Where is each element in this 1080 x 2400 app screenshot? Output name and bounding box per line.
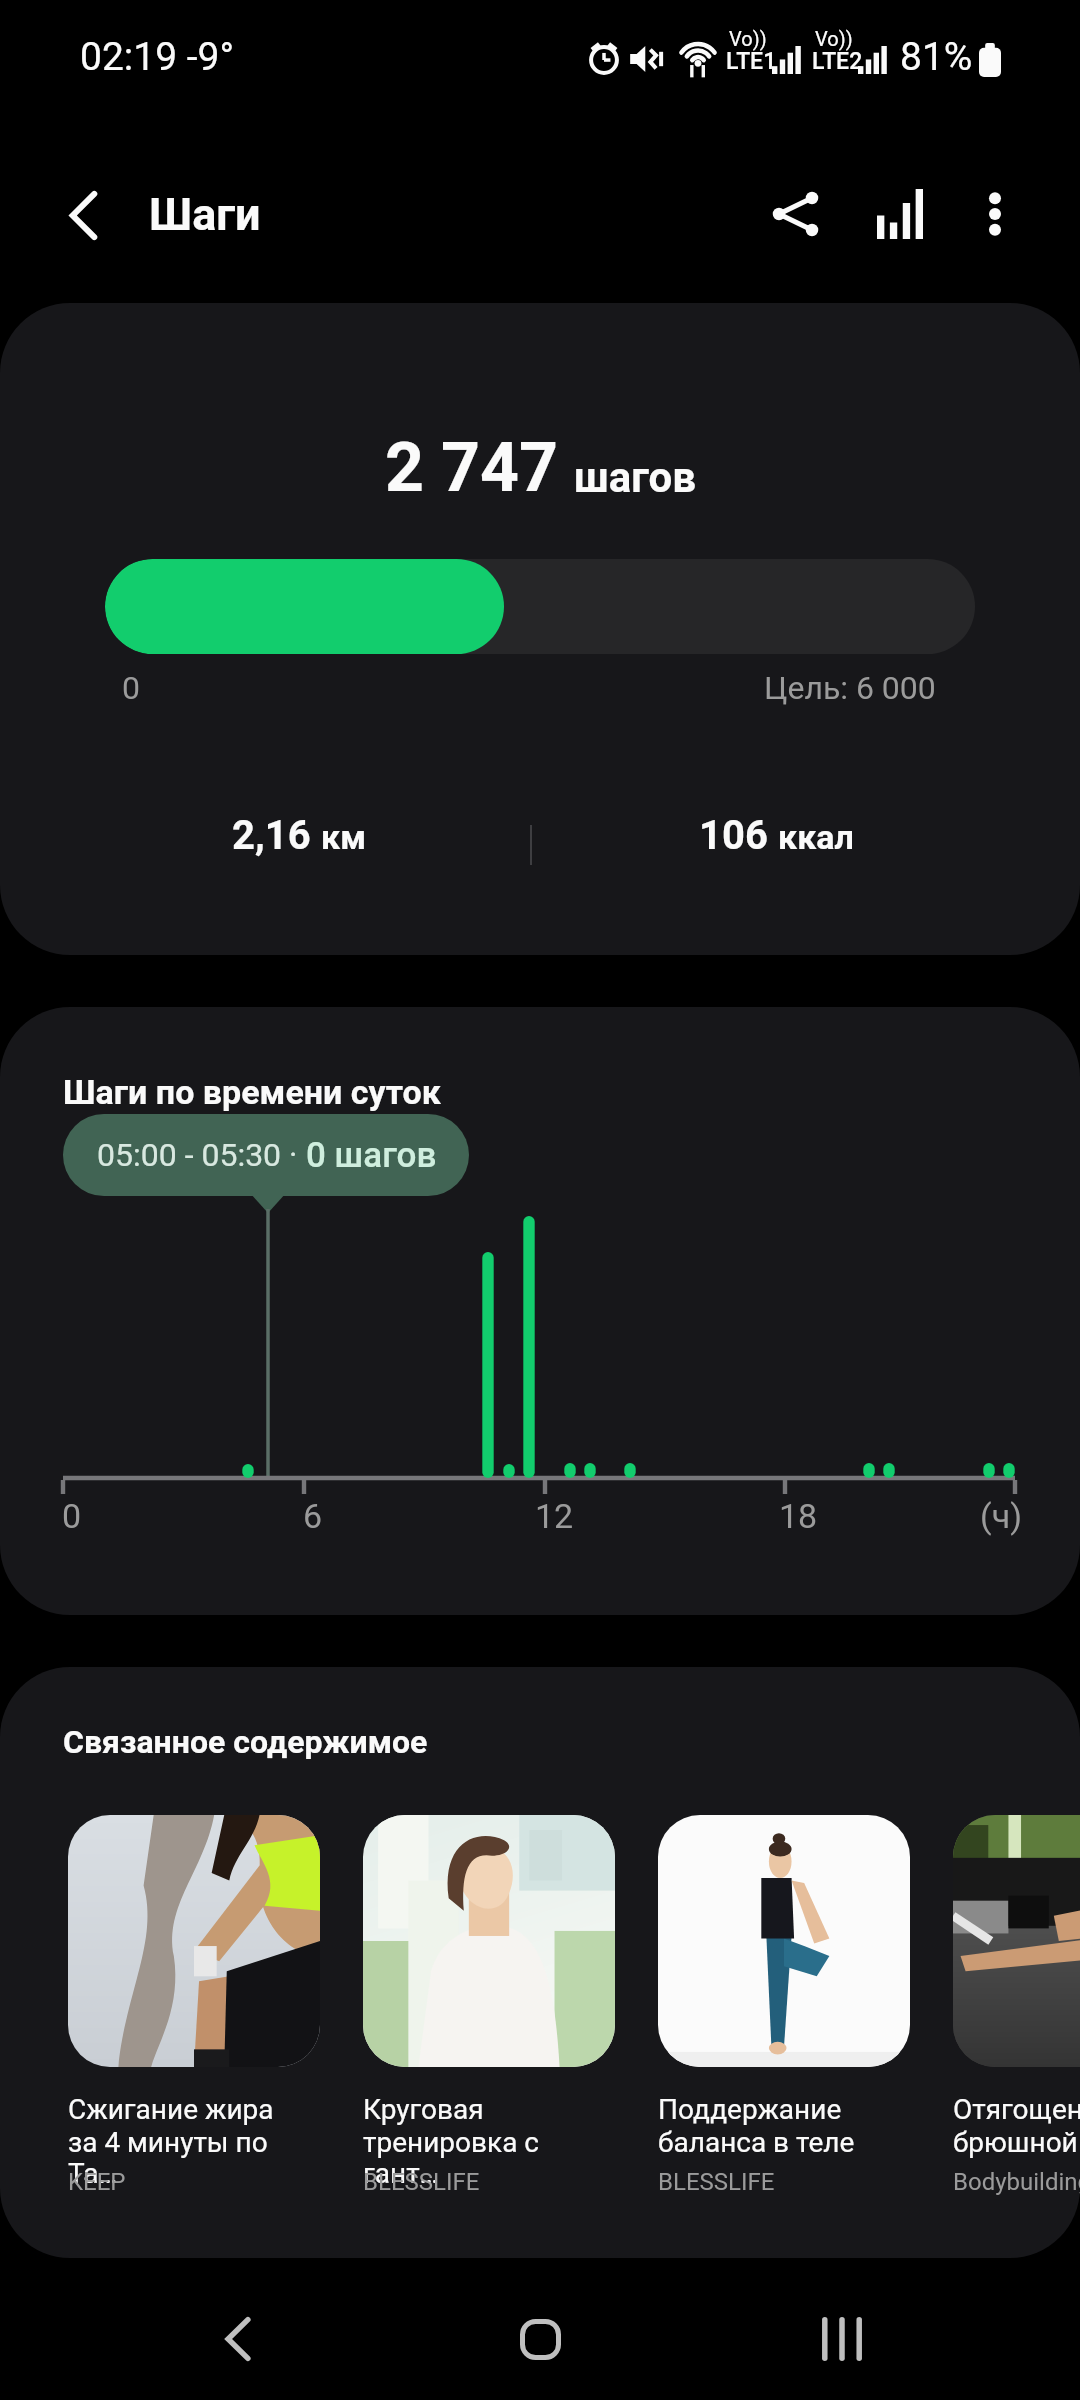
staticText: 12 — [535, 1496, 574, 1536]
button[interactable]: Шаги по времени суток — [0, 1007, 1080, 1615]
staticText: Круговая — [363, 2093, 484, 2126]
button[interactable]: Statistics — [856, 170, 944, 258]
staticText: 0 — [122, 669, 140, 707]
staticText: Vo)) — [815, 27, 853, 50]
staticText: 106 — [699, 812, 768, 859]
staticText: 0 шагов — [306, 1135, 437, 1176]
button[interactable]: Share — [751, 170, 839, 258]
staticText: Поддержание — [658, 2093, 842, 2126]
staticText: ккал — [778, 817, 854, 857]
staticText: 0 — [62, 1496, 82, 1536]
button[interactable]: 2 747 — [0, 303, 1080, 955]
button[interactable]: Recent apps — [792, 2289, 892, 2389]
button[interactable]: More options — [951, 170, 1039, 258]
button[interactable]: Поддержание — [658, 1815, 910, 2207]
button[interactable]: Отягощение — [953, 1815, 1080, 2207]
staticText: Vo)) — [729, 27, 767, 50]
staticText: Связанное содержимое — [63, 1723, 428, 1761]
staticText: брюшной — [953, 2126, 1078, 2159]
staticText: 2 747 — [385, 428, 558, 508]
button[interactable]: Back — [39, 171, 127, 259]
staticText: (ч) — [980, 1496, 1022, 1536]
staticText: шагов — [574, 453, 696, 502]
button[interactable]: Home — [490, 2289, 590, 2389]
staticText: 05:00 - 05:30 · — [97, 1136, 306, 1174]
button[interactable]: Круговая — [363, 1815, 615, 2207]
staticText: Bodybuilding — [953, 2168, 1080, 2196]
staticText: BLESSLIFE — [658, 2168, 910, 2196]
staticText: 18 — [779, 1496, 818, 1536]
staticText: 81% — [900, 34, 973, 80]
staticText: Цель: 6 000 — [764, 669, 936, 707]
staticText: BLESSLIFE — [363, 2168, 615, 2196]
button[interactable]: Сжигание жира — [68, 1815, 320, 2207]
staticText: 02:19 -9° — [80, 34, 235, 80]
staticText: LTE2 — [812, 48, 863, 75]
staticText: 6 — [303, 1496, 323, 1536]
staticText: за 4 минуты по Та… — [68, 2126, 320, 2189]
staticText: Сжигание жира — [68, 2093, 274, 2126]
staticText: Отягощение — [953, 2093, 1080, 2126]
staticText: 2,16 — [232, 812, 311, 859]
staticText: тренировка с гант… — [363, 2126, 615, 2189]
staticText: баланса в теле — [658, 2126, 855, 2159]
staticText: Шаги по времени суток — [63, 1072, 441, 1112]
staticText: км — [321, 817, 366, 857]
staticText: KEEP — [68, 2168, 320, 2196]
button[interactable]: Back — [188, 2289, 288, 2389]
staticText: LTE1 — [726, 48, 777, 75]
staticText: Шаги — [149, 188, 261, 241]
